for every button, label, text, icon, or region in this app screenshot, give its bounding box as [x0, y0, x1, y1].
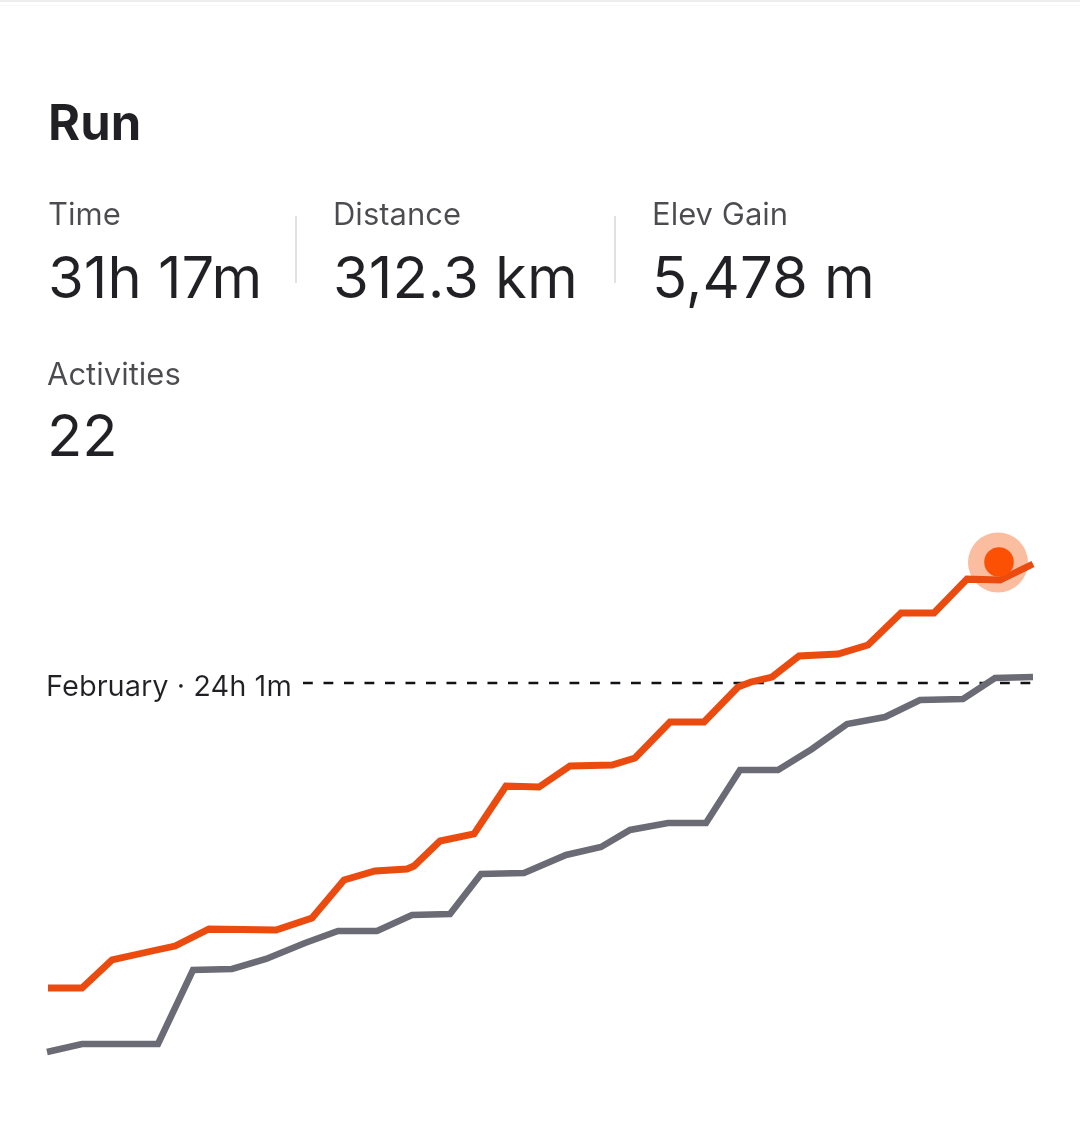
staticText: 5,478 m: [652, 242, 875, 312]
button[interactable]: Activities: [47, 355, 181, 463]
staticText: Run: [48, 93, 142, 152]
button[interactable]: Run: [40, 84, 150, 150]
button[interactable]: Monthly progress chart: [0, 500, 1080, 1142]
staticText: 22: [47, 400, 118, 470]
staticText: Elev Gain: [652, 195, 789, 233]
button[interactable]: Time: [48, 195, 263, 303]
button[interactable]: Elev Gain: [652, 195, 875, 303]
staticText: Activities: [47, 355, 181, 393]
staticText: Time: [48, 195, 121, 233]
staticText: 312.3 km: [333, 242, 578, 312]
staticText: Distance: [333, 195, 462, 233]
button[interactable]: Distance: [333, 195, 578, 303]
staticText: 31h 17m: [48, 242, 263, 312]
staticText: February · 24h 1m: [46, 668, 292, 703]
